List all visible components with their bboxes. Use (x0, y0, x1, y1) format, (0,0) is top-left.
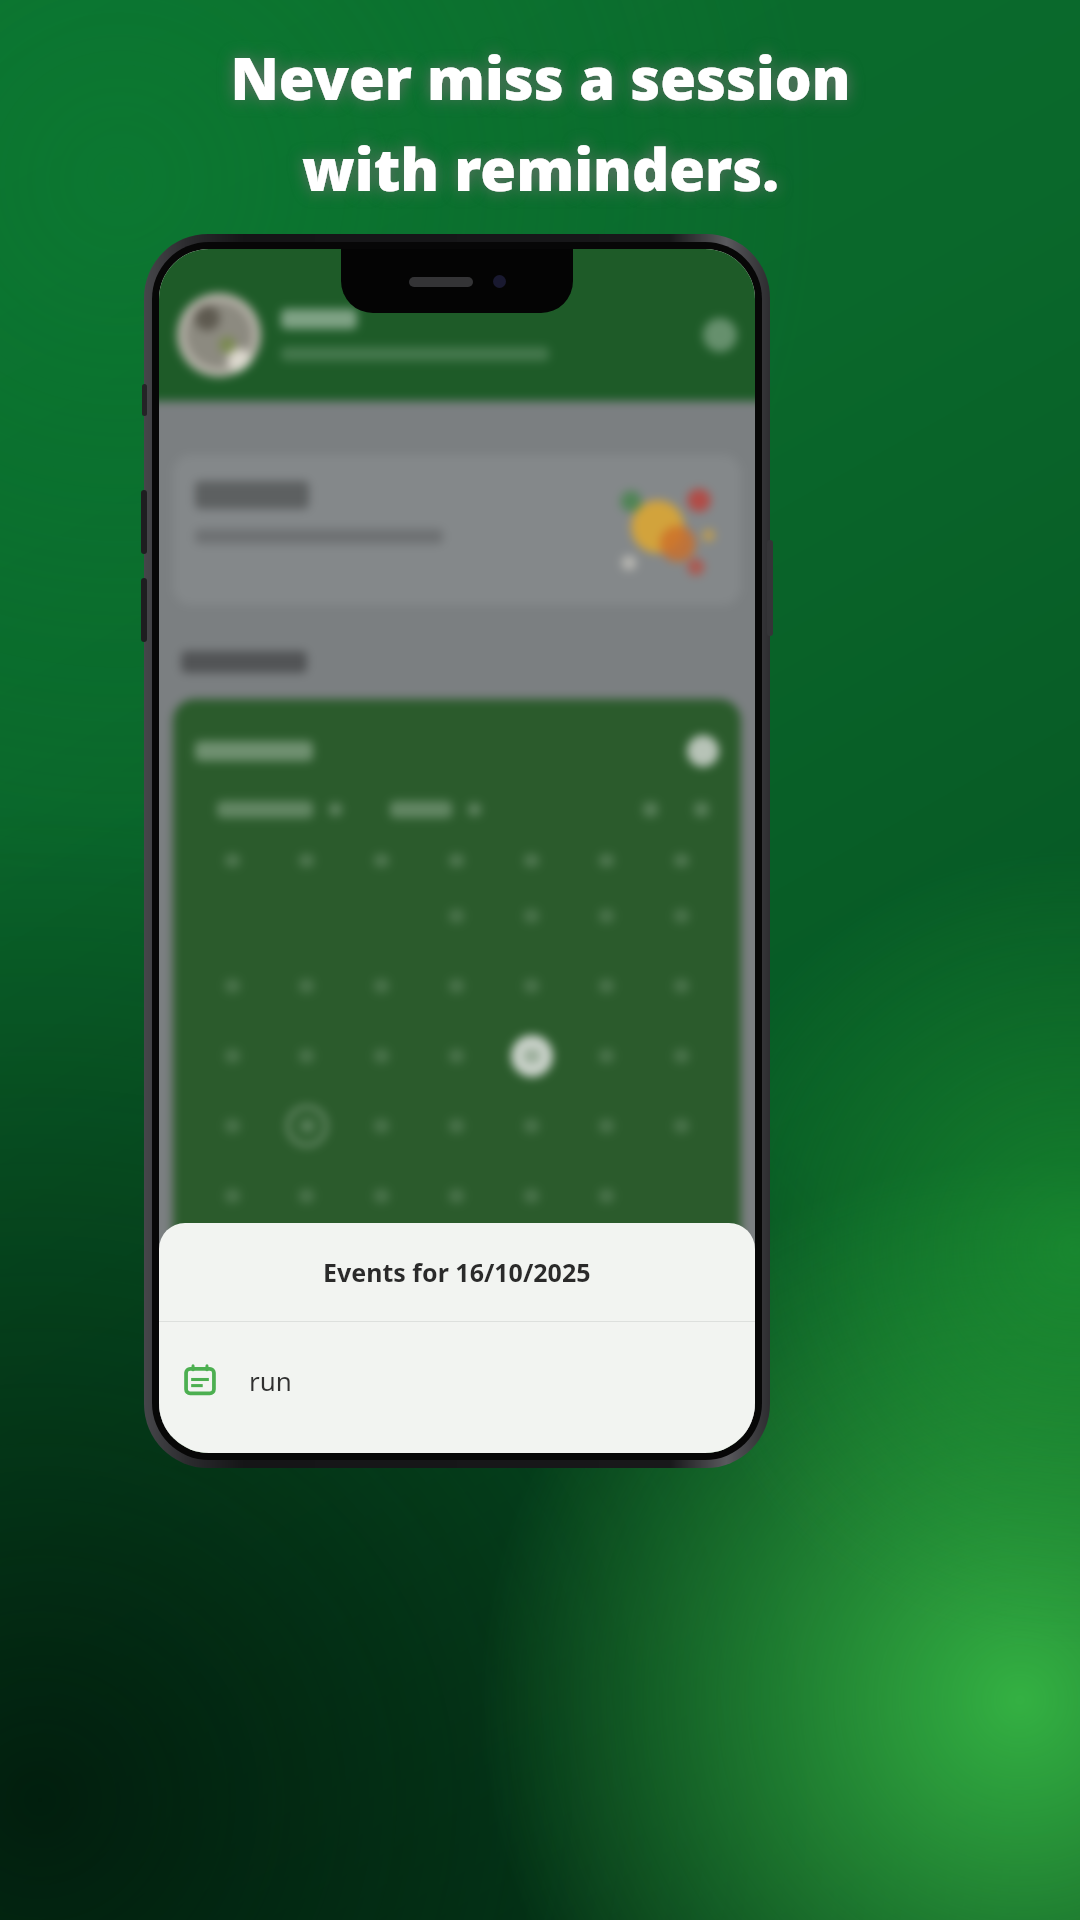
button[interactable] (644, 1035, 719, 1077)
button[interactable] (390, 801, 452, 818)
button[interactable] (195, 1035, 269, 1077)
button[interactable]: Profile picture (159, 249, 755, 401)
button[interactable] (569, 1105, 644, 1147)
button[interactable] (494, 965, 569, 1007)
button[interactable] (269, 1105, 344, 1147)
button[interactable] (195, 1105, 269, 1147)
button[interactable] (494, 1175, 569, 1217)
button[interactable] (344, 1105, 419, 1147)
button[interactable] (195, 965, 269, 1007)
button[interactable] (569, 1175, 644, 1217)
button[interactable] (269, 965, 344, 1007)
staticText: Never miss a session (230, 38, 851, 117)
staticText: run (249, 1363, 292, 1398)
button[interactable] (494, 895, 569, 937)
staticText: Events for 16/10/2025 (323, 1255, 591, 1289)
button[interactable] (494, 1035, 569, 1077)
button[interactable] (419, 1175, 494, 1217)
button[interactable] (644, 965, 719, 1007)
button[interactable]: run (183, 1322, 755, 1438)
button[interactable]: Add event (687, 735, 719, 767)
button[interactable] (569, 1035, 644, 1077)
button[interactable] (569, 965, 644, 1007)
button[interactable] (419, 965, 494, 1007)
button[interactable]: Settings (703, 318, 737, 352)
button[interactable] (569, 895, 644, 937)
button[interactable] (344, 1175, 419, 1217)
button[interactable] (195, 1175, 269, 1217)
button[interactable] (269, 1175, 344, 1217)
button[interactable] (419, 1105, 494, 1147)
staticText: with reminders. (302, 129, 779, 208)
staticText: Never miss a session (230, 38, 851, 117)
button[interactable] (494, 1105, 569, 1147)
button[interactable] (344, 1035, 419, 1077)
button[interactable] (644, 1105, 719, 1147)
button[interactable]: Profile picture (177, 293, 261, 377)
button[interactable] (419, 1035, 494, 1077)
staticText: with reminders. (302, 129, 779, 208)
button[interactable] (419, 895, 494, 937)
button[interactable] (217, 801, 313, 818)
button[interactable] (269, 1035, 344, 1077)
button[interactable] (644, 895, 719, 937)
button[interactable] (344, 965, 419, 1007)
button[interactable] (173, 455, 741, 605)
